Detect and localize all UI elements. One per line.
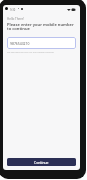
staticText: Hello There! [7,17,24,21]
staticText: 9:30 [10,8,16,12]
staticText: Continue [34,160,49,165]
staticText: 9876543210 [10,41,30,46]
button[interactable]: Continue [7,158,76,166]
button[interactable]: 9876543210 [7,37,76,49]
other: Status icons [67,8,76,11]
staticText: Please enter your mobile number to conti… [7,22,74,31]
staticText: We will send an OTP on this mobile numbe… [7,51,54,54]
